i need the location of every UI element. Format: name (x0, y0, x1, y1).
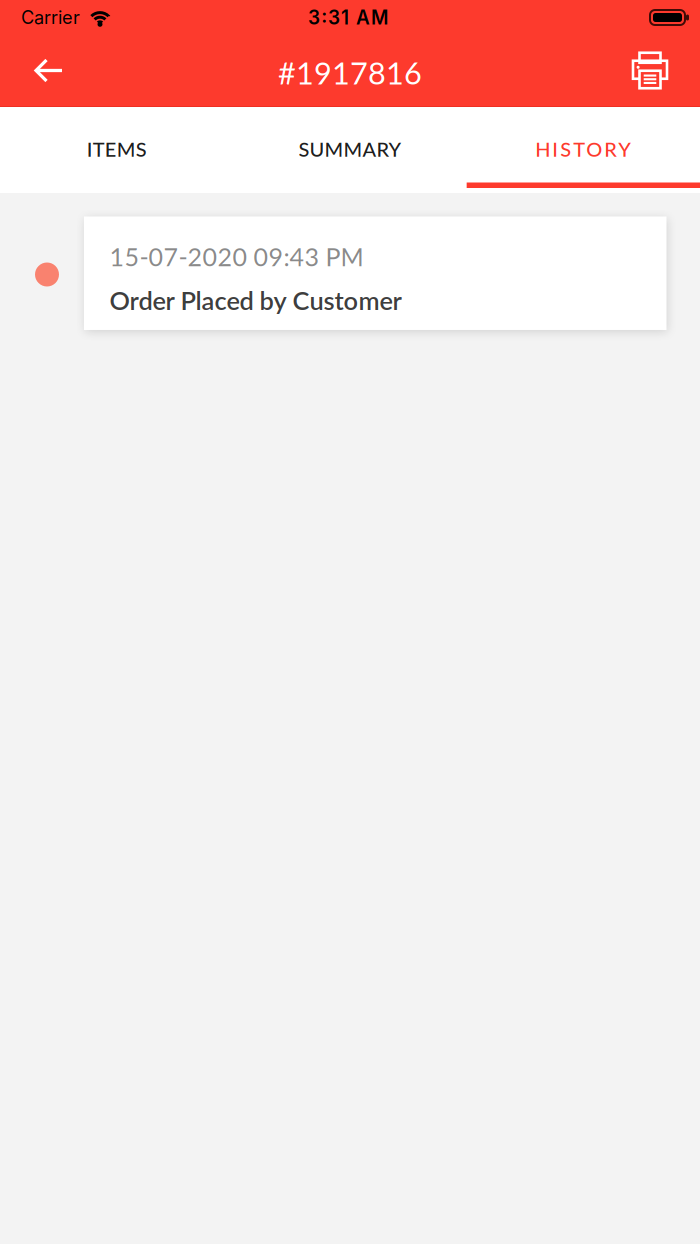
button[interactable]: HISTORY (467, 107, 700, 193)
staticText: #1917816 (278, 54, 422, 91)
staticText: HISTORY (535, 137, 631, 161)
staticText: 3:31 AM (308, 6, 388, 29)
button[interactable]: Print (633, 40, 700, 100)
staticText: Carrier (21, 6, 80, 28)
button[interactable]: Back (0, 40, 62, 100)
button[interactable]: ITEMS (0, 107, 233, 193)
staticText: 15-07-2020 09:43 PM (109, 241, 363, 271)
button[interactable]: SUMMARY (233, 107, 467, 193)
staticText: SUMMARY (298, 137, 401, 161)
staticText: Order Placed by Customer (109, 285, 401, 315)
staticText: ITEMS (87, 137, 147, 161)
